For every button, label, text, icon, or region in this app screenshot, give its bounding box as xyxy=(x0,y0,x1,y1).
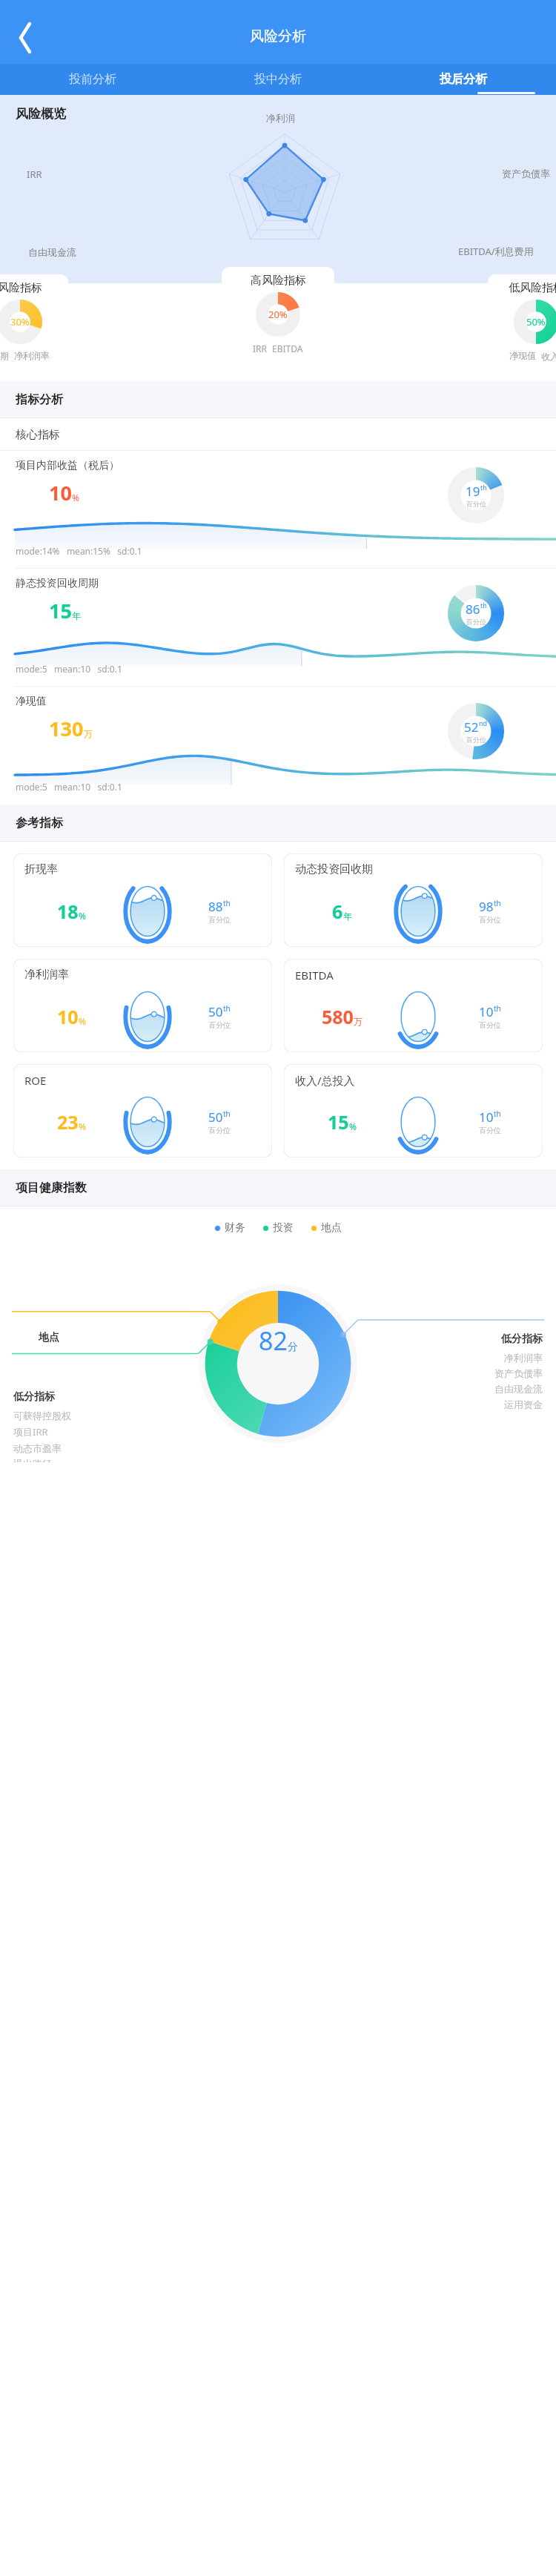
staticText: 核心指标 xyxy=(16,428,60,442)
staticText: 资产负债率 xyxy=(494,1367,543,1379)
staticText: 50 xyxy=(208,1109,223,1126)
staticText: % xyxy=(79,1015,86,1027)
staticText: 净利润率 xyxy=(24,968,69,982)
staticText: 百分位 xyxy=(466,618,486,626)
staticText: th xyxy=(480,601,487,610)
staticText: 可获得控股权 xyxy=(13,1410,71,1421)
staticText: 15 xyxy=(328,1109,349,1135)
staticText: th xyxy=(480,483,487,492)
button[interactable]: 低风险指标 xyxy=(488,274,556,374)
staticText: 自由现金流 xyxy=(494,1383,543,1395)
staticText: % xyxy=(79,910,86,922)
staticText: th xyxy=(494,1003,501,1014)
staticText: 百分位 xyxy=(479,1126,501,1135)
staticText: 低风险指标 xyxy=(509,281,556,295)
staticText: 退出路径 xyxy=(13,1458,52,1462)
staticText: 130 xyxy=(49,715,84,742)
staticText: 静态投资回收周期 xyxy=(16,577,99,590)
staticText: 580 xyxy=(322,1004,354,1029)
staticText: 10 xyxy=(49,479,72,506)
button[interactable]: 风险指标 xyxy=(0,274,68,374)
staticText: ROE xyxy=(24,1073,47,1088)
button[interactable]: 投后分析 xyxy=(371,64,556,95)
staticText: th xyxy=(223,1109,231,1119)
staticText: mode:14% mean:15% sd:0.1 xyxy=(16,545,142,557)
staticText: 10 xyxy=(479,1003,494,1020)
staticText: 收入/ xyxy=(541,350,556,362)
staticText: 86 xyxy=(466,601,480,618)
staticText: 82 xyxy=(259,1324,288,1358)
staticText: 20% xyxy=(268,308,288,321)
button[interactable]: 投中分析 xyxy=(185,64,371,95)
staticText: 净利润 xyxy=(266,112,295,124)
staticText: 10 xyxy=(57,1004,79,1029)
staticText: 98 xyxy=(479,898,494,915)
staticText: 自由现金流 xyxy=(28,246,76,258)
staticText: % xyxy=(349,1120,357,1132)
staticText: 地点 xyxy=(39,1331,59,1344)
staticText: % xyxy=(72,492,79,503)
button[interactable]: 折现率 xyxy=(13,853,272,947)
button[interactable]: Back xyxy=(4,11,46,53)
staticText: EBITDA xyxy=(295,968,334,982)
staticText: 百分位 xyxy=(208,1020,231,1030)
button[interactable]: 净利润率 xyxy=(13,959,272,1052)
staticText: 净利润率 xyxy=(14,350,50,361)
staticText: 6 xyxy=(332,899,343,924)
button[interactable]: EBITDA xyxy=(284,959,543,1052)
staticText: 投中分析 xyxy=(254,72,302,87)
staticText: 低分指标 xyxy=(13,1390,55,1404)
staticText: EBITDA/利息费用 xyxy=(458,245,534,258)
button[interactable]: ROE xyxy=(13,1064,272,1157)
staticText: 百分位 xyxy=(479,915,501,925)
staticText: 万 xyxy=(84,728,93,739)
staticText: 运用资金 xyxy=(504,1398,543,1410)
staticText: 参考指标 xyxy=(16,816,63,830)
staticText: 年 xyxy=(72,610,81,621)
staticText: mode:5 mean:10 sd:0.1 xyxy=(16,663,122,675)
staticText: 投后分析 xyxy=(440,72,487,87)
staticText: 18 xyxy=(57,899,79,924)
button[interactable]: 动态投资回收期 xyxy=(284,853,543,947)
staticText: IRR xyxy=(27,168,42,181)
staticText: nd xyxy=(479,719,488,727)
staticText: 万 xyxy=(354,1016,363,1027)
staticText: 动态市盈率 xyxy=(13,1442,62,1454)
staticText: 风险分析 xyxy=(250,27,306,45)
staticText: 30% xyxy=(10,315,30,328)
staticText: 10 xyxy=(479,1109,494,1126)
staticText: 项目健康指数 xyxy=(16,1180,87,1195)
staticText: 财务 xyxy=(225,1221,245,1235)
button[interactable]: 收入/总投入 xyxy=(284,1064,543,1157)
button[interactable]: 高风险指标 xyxy=(222,267,334,377)
staticText: th xyxy=(494,898,501,908)
staticText: IRR xyxy=(253,343,267,354)
staticText: 低分指标 xyxy=(501,1332,543,1346)
staticText: 项目内部收益（税后） xyxy=(16,459,119,472)
staticText: 百分位 xyxy=(479,1020,501,1030)
staticText: 23 xyxy=(57,1109,79,1135)
staticText: 项目IRR xyxy=(13,1425,48,1439)
staticText: 百分位 xyxy=(466,500,486,508)
staticText: 百分位 xyxy=(208,915,231,925)
staticText: % xyxy=(79,1120,86,1132)
button[interactable]: 投前分析 xyxy=(0,64,185,95)
staticText: 风险概览 xyxy=(16,106,66,122)
staticText: 88 xyxy=(208,898,223,915)
staticText: 资产负债率 xyxy=(502,168,550,179)
staticText: th xyxy=(223,1003,231,1014)
staticText: 动态投资回收期 xyxy=(295,862,373,876)
staticText: 指标分析 xyxy=(16,392,63,407)
staticText: 周期 xyxy=(0,350,9,361)
staticText: 分 xyxy=(288,1341,298,1354)
staticText: 地点 xyxy=(321,1221,342,1235)
staticText: EBITDA xyxy=(272,343,303,354)
staticText: th xyxy=(223,898,231,908)
staticText: 19 xyxy=(466,483,480,500)
staticText: 年 xyxy=(343,911,352,922)
staticText: 净现值 xyxy=(509,350,536,361)
staticText: 高风险指标 xyxy=(251,274,306,288)
staticText: 百分位 xyxy=(208,1126,231,1135)
staticText: th xyxy=(494,1109,501,1119)
staticText: 52 xyxy=(464,719,479,736)
